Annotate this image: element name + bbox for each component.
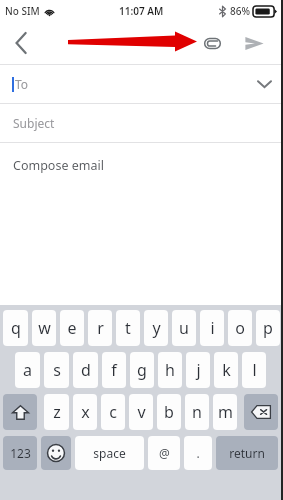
button[interactable]: i [200, 310, 224, 346]
staticText: h [165, 359, 175, 381]
staticText: f [111, 359, 117, 381]
button[interactable]: o [228, 310, 252, 346]
button[interactable]: Send [237, 26, 271, 60]
button[interactable]: Back [0, 22, 42, 64]
staticText: r [97, 317, 104, 339]
button[interactable]: l [242, 352, 266, 388]
button[interactable]: Emoji [41, 436, 71, 470]
staticText: 86% [230, 4, 250, 18]
staticText: u [179, 317, 189, 339]
staticText: 11:07 AM [119, 4, 164, 18]
staticText: x [81, 401, 90, 423]
button[interactable]: space [75, 436, 144, 470]
staticText: . [196, 445, 200, 461]
button[interactable]: j [186, 352, 210, 388]
button[interactable]: z [44, 394, 69, 430]
staticText: p [263, 317, 273, 339]
button[interactable]: b [157, 394, 181, 430]
staticText: q [11, 317, 21, 339]
staticText: s [53, 359, 61, 381]
button[interactable]: s [44, 352, 69, 388]
button[interactable]: u [172, 310, 196, 346]
button[interactable]: p [256, 310, 280, 346]
staticText: Compose email [13, 157, 104, 174]
staticText: e [67, 317, 77, 339]
staticText: b [164, 401, 174, 423]
staticText: k [222, 359, 231, 381]
staticText: o [235, 317, 245, 339]
staticText: n [192, 401, 202, 423]
button[interactable]: Compose email [0, 143, 283, 187]
button[interactable]: m [213, 394, 237, 430]
staticText: g [137, 359, 147, 381]
button[interactable]: 123 [3, 436, 37, 470]
staticText: space [93, 445, 126, 461]
staticText: z [53, 401, 61, 423]
staticText: v [137, 401, 146, 423]
button[interactable]: r [88, 310, 112, 346]
button[interactable]: To [0, 65, 283, 103]
staticText: w [38, 317, 51, 339]
button[interactable]: t [116, 310, 140, 346]
staticText: Subject [13, 115, 55, 131]
staticText: d [81, 359, 91, 381]
staticText: return [229, 445, 265, 461]
button[interactable]: q [3, 310, 28, 346]
button[interactable]: e [60, 310, 84, 346]
button[interactable]: f [102, 352, 126, 388]
staticText: @ [159, 445, 170, 461]
staticText: i [210, 317, 215, 339]
button[interactable]: return [216, 436, 278, 470]
button[interactable]: . [184, 436, 212, 470]
button[interactable]: Shift [3, 394, 37, 430]
button[interactable]: y [144, 310, 168, 346]
staticText: a [23, 359, 32, 381]
button[interactable]: k [214, 352, 238, 388]
button[interactable]: c [101, 394, 125, 430]
staticText: To [15, 76, 29, 92]
staticText: 123 [10, 445, 31, 461]
button[interactable]: n [185, 394, 209, 430]
staticText: c [109, 401, 117, 423]
button[interactable]: Attach file [195, 26, 229, 60]
button[interactable]: Subject [0, 104, 283, 142]
staticText: No SIM [5, 4, 40, 18]
button[interactable]: d [73, 352, 98, 388]
button[interactable]: x [73, 394, 97, 430]
button[interactable]: w [32, 310, 56, 346]
button[interactable]: g [130, 352, 154, 388]
staticText: t [125, 317, 131, 339]
button[interactable]: v [129, 394, 153, 430]
button[interactable]: h [158, 352, 182, 388]
button[interactable]: Backspace [244, 394, 278, 430]
staticText: m [218, 401, 233, 423]
button[interactable]: a [15, 352, 40, 388]
button[interactable]: @ [148, 436, 180, 470]
staticText: l [252, 359, 257, 381]
staticText: y [152, 317, 161, 339]
staticText: j [196, 359, 201, 381]
